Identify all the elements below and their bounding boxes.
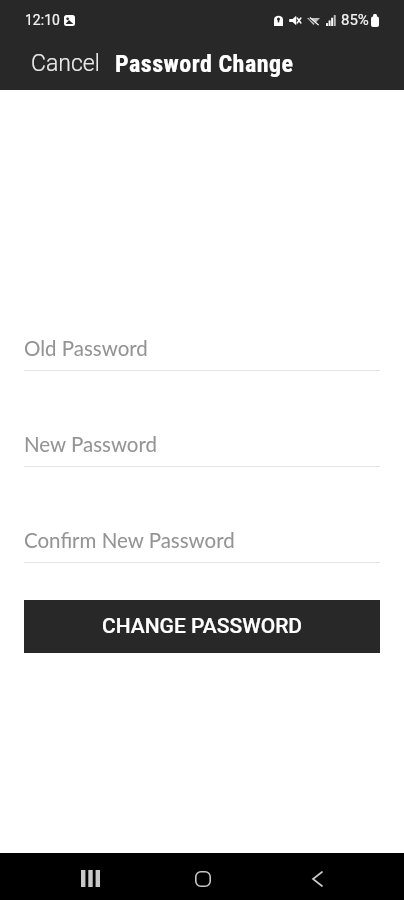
- button[interactable]: Cancel: [0, 42, 115, 85]
- staticText: 85%: [341, 11, 369, 29]
- staticText: Password Change: [115, 50, 294, 78]
- button[interactable]: CHANGE PASSWORD: [24, 600, 380, 653]
- staticText: New Password: [24, 432, 158, 457]
- button[interactable]: Recent apps: [66, 855, 114, 900]
- button[interactable]: New Password: [24, 432, 380, 467]
- staticText: CHANGE PASSWORD: [102, 614, 303, 639]
- button[interactable]: Back: [293, 855, 341, 900]
- button[interactable]: Confirm New Password: [24, 528, 380, 563]
- staticText: 12:10: [25, 12, 60, 28]
- staticText: Cancel: [31, 50, 100, 77]
- button[interactable]: Home: [179, 855, 227, 900]
- staticText: Old Password: [24, 336, 148, 361]
- staticText: Confirm New Password: [24, 528, 235, 553]
- button[interactable]: Old Password: [24, 336, 380, 371]
